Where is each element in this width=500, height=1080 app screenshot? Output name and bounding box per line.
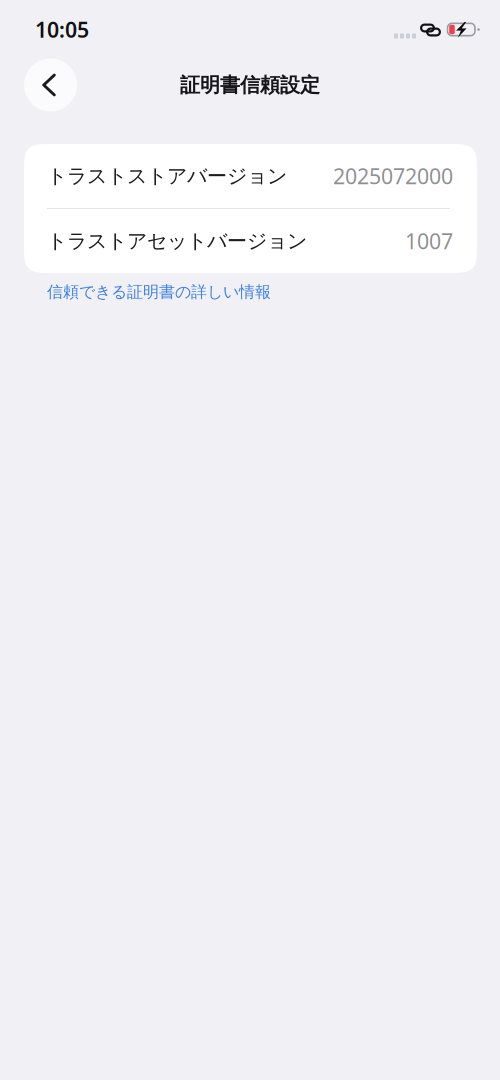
staticText: 信頼できる証明書の詳しい情報 bbox=[47, 282, 271, 302]
button[interactable]: Back bbox=[24, 58, 77, 111]
staticText: トラストストアバージョン bbox=[47, 164, 287, 188]
staticText: 10:05 bbox=[35, 15, 89, 44]
button[interactable]: トラストアセットバージョン bbox=[24, 209, 477, 273]
staticText: トラストアセットバージョン bbox=[47, 229, 307, 253]
staticText: 1007 bbox=[405, 227, 453, 255]
staticText: 2025072000 bbox=[333, 162, 453, 190]
staticText: 証明書信頼設定 bbox=[180, 73, 320, 97]
button[interactable]: 信頼できる証明書の詳しい情報 bbox=[47, 273, 283, 308]
button[interactable]: トラストストアバージョン bbox=[24, 144, 477, 208]
